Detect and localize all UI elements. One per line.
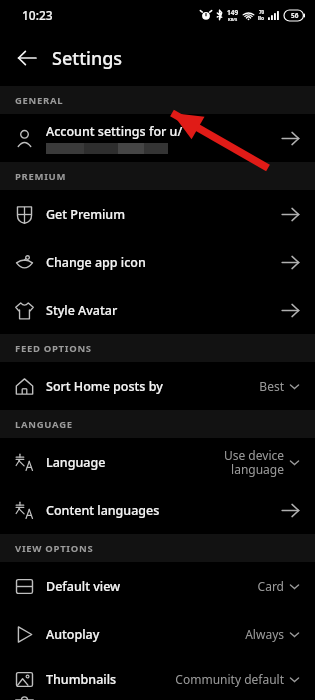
staticText: Autoplay (46, 626, 245, 643)
button[interactable]: Thumbnails (0, 658, 315, 700)
staticText: Always (245, 626, 284, 642)
staticText: Settings (52, 46, 123, 71)
staticText: Best (259, 378, 284, 394)
staticText: 149 (227, 8, 239, 17)
staticText: KB/S (228, 17, 238, 22)
button[interactable]: Get Premium (0, 190, 315, 238)
staticText: Language (46, 454, 223, 471)
button[interactable]: Account settings for u/ (0, 114, 315, 162)
button[interactable]: Sort Home posts by (0, 362, 315, 410)
staticText: Get Premium (46, 206, 281, 223)
staticText: Card (257, 578, 284, 594)
button[interactable]: Content languages (0, 486, 315, 534)
staticText: Community default (175, 671, 284, 687)
button[interactable]: Autoplay (0, 610, 315, 658)
staticText: PREMIUM (15, 170, 67, 183)
button[interactable]: Back (8, 39, 46, 77)
staticText: Sort Home posts by (46, 378, 259, 395)
staticText: 10:23 (22, 7, 53, 23)
staticText: llo (258, 15, 265, 22)
button[interactable]: Language (0, 438, 315, 486)
staticText: LANGUAGE (15, 418, 73, 431)
staticText: FEED OPTIONS (15, 342, 92, 355)
staticText: Account settings for u/ (46, 123, 183, 140)
staticText: Use device language (223, 447, 284, 478)
button[interactable]: Change app icon (0, 238, 315, 286)
button[interactable]: Style Avatar (0, 286, 315, 334)
staticText: VIEW OPTIONS (15, 542, 94, 555)
staticText: GENERAL (15, 94, 64, 107)
staticText: Change app icon (46, 254, 281, 271)
staticText: Style Avatar (46, 302, 281, 319)
staticText: 70 (259, 9, 265, 15)
staticText: Thumbnails (46, 671, 175, 688)
staticText: Default view (46, 578, 257, 595)
button[interactable]: Default view (0, 562, 315, 610)
staticText: 56 (291, 11, 299, 20)
staticText: Content languages (46, 502, 281, 519)
